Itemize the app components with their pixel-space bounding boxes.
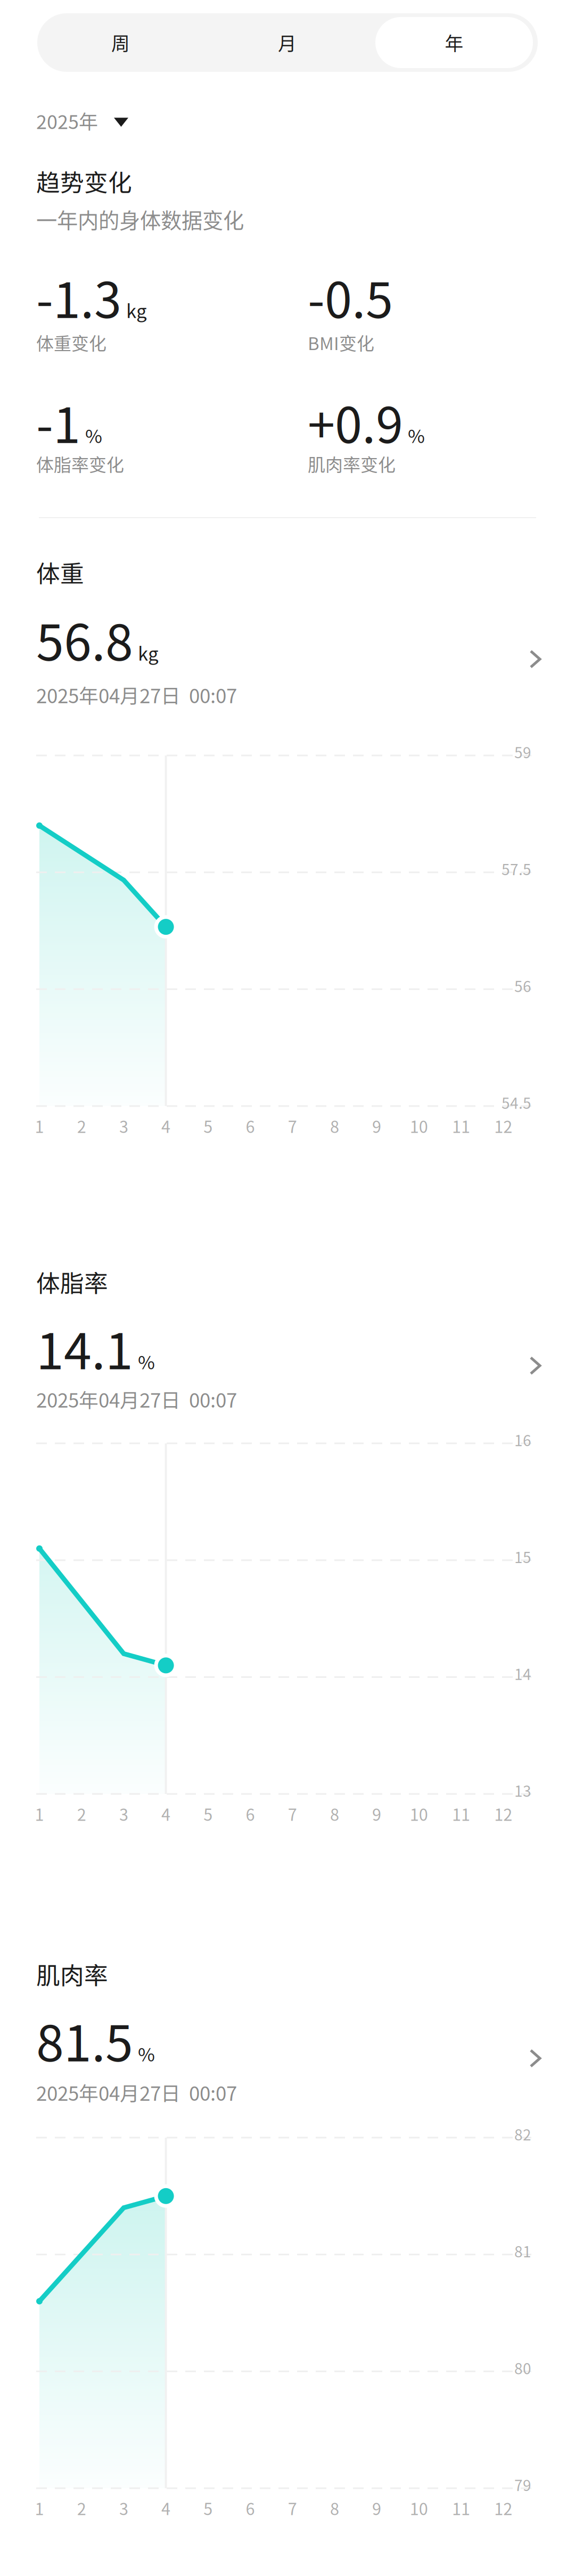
staticText: 7 xyxy=(288,1802,297,1825)
staticText: 体脂率 xyxy=(36,1265,108,1299)
staticText: 10 xyxy=(410,2496,428,2520)
button[interactable]: 年 xyxy=(371,13,538,72)
staticText: 9 xyxy=(372,1802,381,1825)
button[interactable]: 56.8 xyxy=(0,600,575,712)
staticText: 1 xyxy=(35,1114,44,1138)
button[interactable]: 81.5 xyxy=(0,2001,575,2110)
staticText: 周 xyxy=(111,29,130,56)
staticText: % xyxy=(408,422,425,448)
staticText: 13 xyxy=(514,1780,531,1801)
staticText: 59 xyxy=(514,741,531,763)
staticText: 7 xyxy=(288,2496,297,2520)
staticText: 趋势变化 xyxy=(36,164,132,198)
staticText: 12 xyxy=(494,2496,512,2520)
staticText: 14 xyxy=(514,1663,531,1684)
staticText: 4 xyxy=(161,2496,170,2520)
staticText: 82 xyxy=(514,2123,531,2145)
staticText: 14.1 xyxy=(36,1312,133,1383)
staticText: 5 xyxy=(204,1802,213,1825)
staticText: % xyxy=(85,422,102,448)
staticText: 体重 xyxy=(36,555,84,589)
staticText: 年 xyxy=(445,29,463,56)
staticText: 2025年04月27日 00:07 xyxy=(36,1385,237,1413)
staticText: 2025年04月27日 00:07 xyxy=(36,2078,237,2106)
staticText: 8 xyxy=(330,2496,339,2520)
staticText: 10 xyxy=(410,1114,428,1138)
staticText: +0.9 xyxy=(308,386,403,457)
staticText: 肌肉率 xyxy=(36,1957,108,1991)
staticText: 16 xyxy=(514,1429,531,1450)
staticText: 7 xyxy=(288,1114,297,1138)
staticText: 12 xyxy=(494,1802,512,1825)
staticText: 2025年 xyxy=(36,107,98,134)
staticText: 2025年04月27日 00:07 xyxy=(36,680,237,709)
staticText: 10 xyxy=(410,1802,428,1825)
staticText: 79 xyxy=(514,2474,531,2495)
staticText: 6 xyxy=(246,2496,255,2520)
staticText: 月 xyxy=(278,29,297,56)
staticText: 体脂率变化 xyxy=(36,451,124,476)
staticText: 1 xyxy=(35,1802,44,1825)
staticText: kg xyxy=(126,297,147,323)
staticText: 1 xyxy=(35,2496,44,2520)
staticText: 5 xyxy=(204,2496,213,2520)
staticText: kg xyxy=(138,639,159,666)
staticText: 9 xyxy=(372,2496,381,2520)
staticText: 57.5 xyxy=(502,858,531,879)
staticText: % xyxy=(138,1348,155,1375)
button[interactable]: 周 xyxy=(37,13,204,72)
staticText: % xyxy=(138,2040,155,2067)
staticText: 6 xyxy=(246,1802,255,1825)
staticText: 5 xyxy=(204,1114,213,1138)
staticText: 肌肉率变化 xyxy=(308,451,396,476)
staticText: 2 xyxy=(77,1114,86,1138)
staticText: 56 xyxy=(514,975,531,996)
button[interactable]: 2025年 xyxy=(0,101,141,140)
staticText: 15 xyxy=(514,1546,531,1567)
staticText: 56.8 xyxy=(36,603,133,675)
staticText: 54.5 xyxy=(502,1092,531,1113)
staticText: -0.5 xyxy=(308,261,393,332)
button[interactable]: 14.1 xyxy=(0,1308,575,1416)
staticText: 11 xyxy=(452,1802,470,1825)
staticText: 11 xyxy=(452,2496,470,2520)
staticText: 一年内的身体数据变化 xyxy=(36,204,244,234)
staticText: 4 xyxy=(161,1802,170,1825)
staticText: -1.3 xyxy=(36,261,121,332)
staticText: 体重变化 xyxy=(36,330,106,355)
staticText: 8 xyxy=(330,1802,339,1825)
staticText: 9 xyxy=(372,1114,381,1138)
staticText: 80 xyxy=(514,2357,531,2378)
staticText: 3 xyxy=(119,1802,128,1825)
staticText: 2 xyxy=(77,1802,86,1825)
staticText: 2 xyxy=(77,2496,86,2520)
button[interactable]: 月 xyxy=(204,13,371,72)
staticText: BMI变化 xyxy=(308,330,374,355)
staticText: 81.5 xyxy=(36,2004,133,2076)
staticText: -1 xyxy=(36,386,80,457)
staticText: 12 xyxy=(494,1114,512,1138)
staticText: 4 xyxy=(161,1114,170,1138)
staticText: 3 xyxy=(119,2496,128,2520)
staticText: 11 xyxy=(452,1114,470,1138)
staticText: 6 xyxy=(246,1114,255,1138)
staticText: 81 xyxy=(514,2240,531,2262)
staticText: 3 xyxy=(119,1114,128,1138)
staticText: 8 xyxy=(330,1114,339,1138)
